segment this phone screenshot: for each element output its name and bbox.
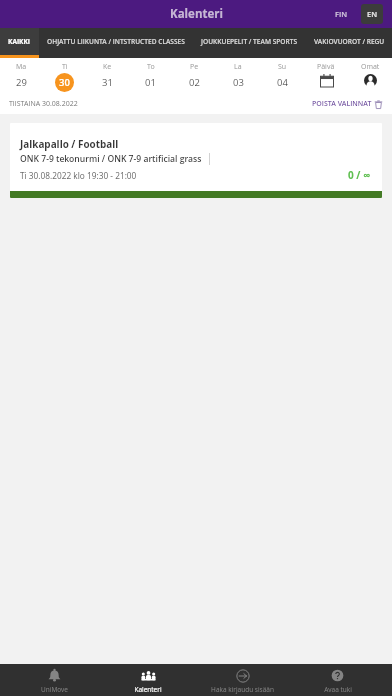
staticText: Ti 30.08.2022 klo 19:30 - 21:00 [20,170,137,181]
staticText: 29 [16,76,27,89]
staticText: 0 / ∞ [348,168,371,182]
staticText: La [234,62,242,72]
staticText: POISTA VALINNAT [312,99,372,109]
staticText: Ma [16,62,27,72]
button[interactable]: Ti [43,58,86,94]
button[interactable]: Valitse päivä [304,58,348,94]
staticText: 04 [277,76,288,89]
other: Avaa tuki [331,669,344,682]
staticText: 02 [189,76,200,89]
other: Kalenteri [141,668,156,683]
button[interactable]: OHJATTU LIIKUNTA / INTSTRUCTED CLASSES [39,28,193,58]
staticText: Su [278,62,287,72]
button[interactable]: EN [361,4,383,24]
button[interactable]: Ke [86,58,129,94]
staticText: Kalenteri [134,685,162,694]
staticText: Kalenteri [170,6,223,22]
staticText: Avaa tuki [324,685,352,694]
staticText: EN [367,9,378,19]
staticText: Ti [62,62,68,72]
button[interactable]: Jalkapallo / Football [10,123,382,198]
staticText: Ke [103,62,112,72]
button[interactable]: POISTA VALINNAT [312,97,383,111]
staticText: Haka kirjaudu sisään [211,685,274,694]
staticText: VAKIOVUOROT / REGULAR SHIFTS [314,37,384,46]
button[interactable]: Pe [172,58,216,94]
staticText: 30 [59,76,70,89]
staticText: ONK 7-9 tekonurmi / ONK 7-9 artificial g… [20,153,202,165]
button[interactable]: VAKIOVUOROT / REGULAR SHIFTS [306,28,392,58]
staticText: Pe [190,62,199,72]
staticText: To [147,62,155,72]
button[interactable]: UniMove [7,664,101,696]
staticText: UniMove [41,685,68,694]
button[interactable]: Kalenteri [101,664,195,696]
other: Haka kirjaudu sisään [236,669,250,683]
staticText: 01 [145,76,156,89]
staticText: Omat [361,62,380,72]
staticText: Päivä [317,62,335,72]
staticText: 31 [102,76,113,89]
button[interactable]: Haka kirjaudu sisään [195,664,290,696]
button[interactable]: To [129,58,172,94]
staticText: OHJATTU LIIKUNTA / INTSTRUCTED CLASSES [47,37,185,46]
button[interactable]: JOUKKUEPELIT / TEAM SPORTS [193,28,306,58]
button[interactable]: KAIKKI [0,28,39,58]
button[interactable]: La [216,58,260,94]
staticText: JOUKKUEPELIT / TEAM SPORTS [201,37,298,46]
button[interactable]: FIN [331,5,352,23]
staticText: FIN [335,9,348,19]
button[interactable]: Ma [0,58,43,94]
staticText: 03 [233,76,244,89]
staticText: TIISTAINA 30.08.2022 [9,99,78,109]
staticText: KAIKKI [8,37,31,46]
button[interactable]: Su [260,58,304,94]
button[interactable]: Omat varaukset [348,58,392,94]
button[interactable]: Avaa tuki [290,664,385,696]
other: UniMove [48,669,61,682]
staticText: Jalkapallo / Football [20,137,119,150]
